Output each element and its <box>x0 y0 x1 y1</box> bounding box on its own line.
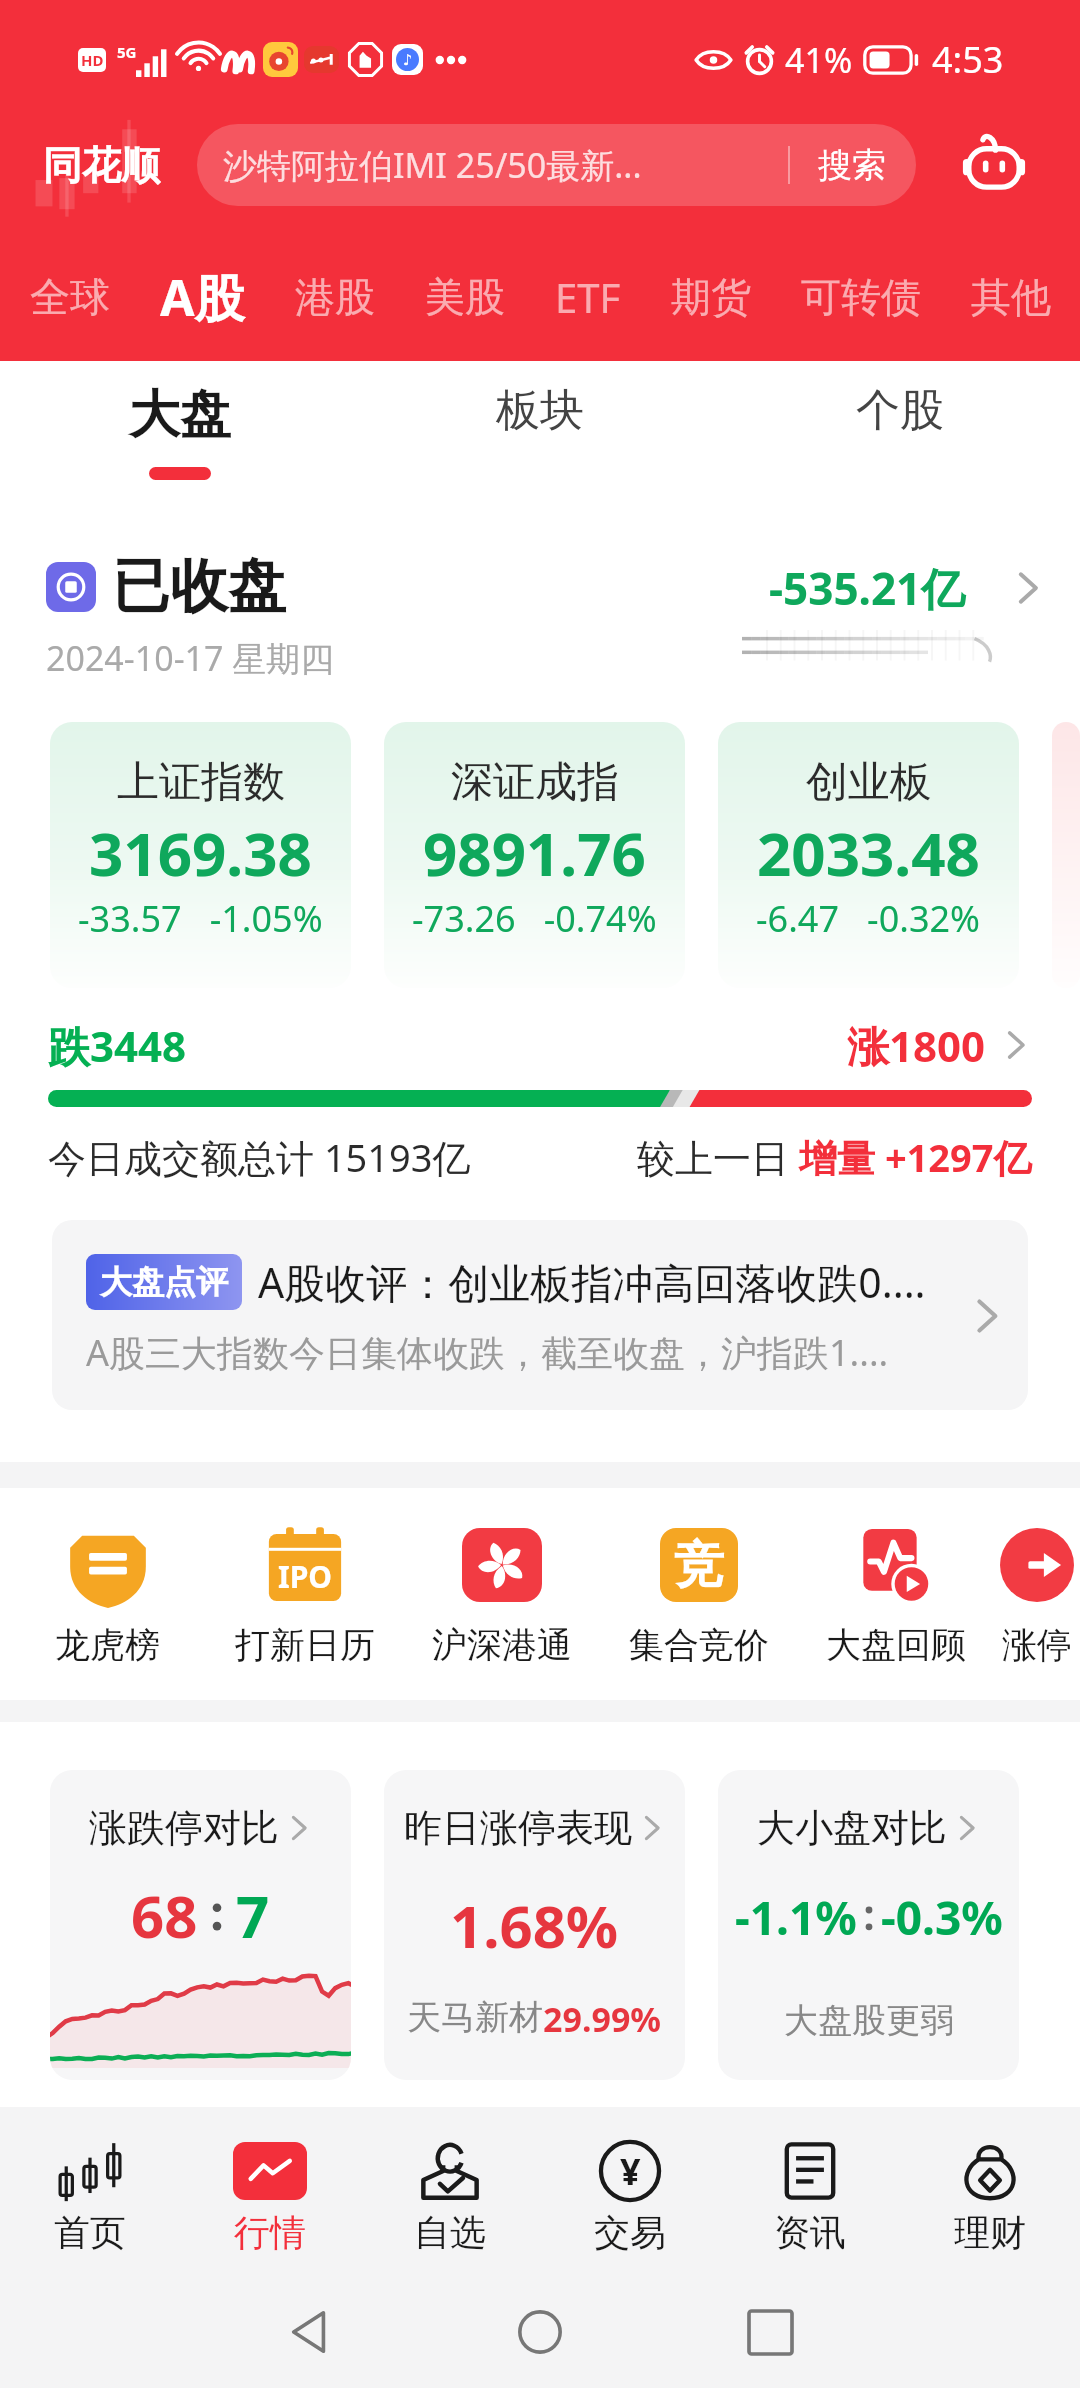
staticText: 涨停 <box>1002 1623 1072 1667</box>
staticText: 68 <box>131 1876 198 1955</box>
button[interactable]: 竞 <box>600 1522 797 1667</box>
staticText: 美股 <box>425 272 505 322</box>
staticText: 4:53 <box>932 35 1004 84</box>
staticText: 较上一日 <box>637 1131 799 1183</box>
staticText: 5G <box>117 42 137 62</box>
staticText: IPO <box>278 1556 333 1597</box>
button[interactable]: IPO <box>206 1522 403 1667</box>
button[interactable]: 首页 <box>0 2107 180 2275</box>
button[interactable]: -535.21亿 <box>742 550 1046 658</box>
staticText: 交易 <box>594 2210 666 2255</box>
staticText: 上证指数 <box>117 756 285 809</box>
staticText: 大盘股更弱 <box>784 1999 954 2042</box>
staticText: 搜索 <box>818 144 886 187</box>
staticText: 大小盘对比 <box>757 1804 947 1852</box>
button[interactable]: ¥ <box>540 2107 720 2275</box>
staticText: HD <box>81 50 104 70</box>
button[interactable]: 全球 <box>5 272 135 322</box>
staticText: 昨日涨停表现 <box>404 1804 632 1852</box>
staticText: -0.3% <box>881 1886 1003 1949</box>
staticText: 竞 <box>674 1534 724 1597</box>
staticText: 同花顺 <box>43 141 160 190</box>
staticText: ETF <box>555 270 621 324</box>
staticText: A股收评：创业板指冲高回落收跌0.... <box>258 1254 926 1310</box>
staticText: 沪深港通 <box>432 1623 572 1667</box>
button[interactable]: 沪深港通 <box>403 1522 600 1667</box>
staticText: 理财 <box>954 2210 1026 2255</box>
button[interactable]: 其他 <box>946 272 1076 322</box>
staticText: ¥ <box>620 2147 641 2196</box>
staticText: 涨跌停对比 <box>89 1804 279 1852</box>
button[interactable]: 龙虎榜 <box>9 1522 206 1667</box>
staticText: 集合竞价 <box>629 1623 769 1667</box>
staticText: 期货 <box>671 272 751 322</box>
staticText: 2024-10-17 星期四 <box>46 635 335 681</box>
button[interactable]: 返回 <box>225 2277 395 2387</box>
staticText: A股 <box>160 263 245 331</box>
staticText: 港股 <box>295 272 375 322</box>
staticText: 个股 <box>856 383 944 438</box>
staticText: 自选 <box>414 2210 486 2255</box>
staticText: 1.68% <box>450 1886 619 1965</box>
staticText: -73.26 -0.74% <box>412 894 657 943</box>
staticText: 今日成交额总计 15193亿 <box>48 1131 471 1183</box>
staticText: 首页 <box>54 2210 126 2255</box>
staticText: -1.1% <box>735 1886 857 1949</box>
button[interactable]: 期货 <box>646 272 776 322</box>
button[interactable]: 自选 <box>360 2107 540 2275</box>
staticText: 29.99% <box>543 1996 662 2042</box>
staticText: 深证成指 <box>451 756 619 809</box>
staticText: 创业板 <box>806 756 932 809</box>
staticText: 7 <box>236 1876 270 1955</box>
staticText: ♪ <box>403 51 413 68</box>
button[interactable]: 昨日涨停表现 <box>384 1770 685 2080</box>
button[interactable]: AI助手 <box>952 123 1036 207</box>
button[interactable]: 大盘 <box>0 361 360 500</box>
staticText: 2033.48 <box>757 812 980 894</box>
button[interactable]: 主屏幕 <box>455 2277 625 2387</box>
button[interactable]: 大盘点评 <box>52 1220 1028 1410</box>
button[interactable]: 跌3448 <box>48 1014 1032 1076</box>
staticText: 行情 <box>234 2210 306 2255</box>
button[interactable]: ETF <box>530 270 646 324</box>
button[interactable]: 资讯 <box>720 2107 900 2275</box>
staticText: 已收盘 <box>112 550 286 623</box>
staticText: A股三大指数今日集体收跌，截至收盘，沪指跌1.... <box>86 1328 889 1377</box>
staticText: 增量 +1297亿 <box>799 1131 1032 1183</box>
button[interactable]: 沙特阿拉伯IMI 25/50最新... <box>197 124 916 206</box>
staticText: 可转债 <box>801 272 921 322</box>
staticText: 全球 <box>30 272 110 322</box>
button[interactable]: 创业板 <box>718 722 1019 988</box>
button[interactable]: 深证成指 <box>384 722 685 988</box>
staticText: -6.47 -0.32% <box>756 894 981 943</box>
staticText: 涨1800 <box>847 1017 986 1074</box>
button[interactable]: 涨跌停对比 <box>50 1770 351 2080</box>
staticText: 其他 <box>971 272 1051 322</box>
staticText: 龙虎榜 <box>55 1623 160 1667</box>
button[interactable]: 理财 <box>900 2107 1080 2275</box>
staticText: 板块 <box>496 383 584 438</box>
button[interactable]: 可转债 <box>776 272 946 322</box>
staticText: -33.57 -1.05% <box>78 894 323 943</box>
button[interactable]: A股 <box>135 263 270 331</box>
staticText: 跌3448 <box>48 1017 187 1074</box>
button[interactable]: 板块 <box>360 361 720 500</box>
staticText: 打新日历 <box>235 1623 375 1667</box>
staticText: 41% <box>785 37 853 83</box>
staticText: 9891.76 <box>423 812 646 894</box>
staticText: 大盘 <box>129 383 231 447</box>
button[interactable]: 涨停 <box>994 1522 1080 1667</box>
button[interactable]: 最近任务 <box>685 2277 855 2387</box>
button[interactable]: 美股 <box>400 272 530 322</box>
button[interactable]: 上证指数 <box>50 722 351 988</box>
button[interactable]: 大小盘对比 <box>718 1770 1019 2080</box>
staticText: 沙特阿拉伯IMI 25/50最新... <box>223 142 642 188</box>
button[interactable]: 个股 <box>720 361 1080 500</box>
button[interactable]: 行情 <box>180 2107 360 2275</box>
staticText: 天马新材 <box>407 1996 543 2039</box>
staticText: -535.21亿 <box>769 558 966 618</box>
staticText: 3169.38 <box>89 812 312 894</box>
button[interactable]: 港股 <box>270 272 400 322</box>
button[interactable]: 大盘回顾 <box>797 1522 994 1667</box>
staticText: 大盘点评 <box>100 1262 228 1302</box>
